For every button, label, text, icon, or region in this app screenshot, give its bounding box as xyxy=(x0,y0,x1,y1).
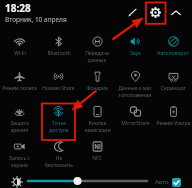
button[interactable]: Скриншот xyxy=(154,67,192,102)
button[interactable]: Передача данных xyxy=(78,32,116,67)
button[interactable]: Режим Ультра xyxy=(154,102,192,137)
staticText: Точка доступа xyxy=(49,120,69,133)
staticText: Huawei Share xyxy=(42,85,75,92)
staticText: Режим Ультра xyxy=(156,120,191,127)
staticText: Защита зрения xyxy=(10,120,29,133)
staticText: Wi-Fi xyxy=(14,50,26,57)
staticText: Данные о мес тоположении xyxy=(118,85,152,98)
button[interactable]: Режим полета xyxy=(0,67,39,102)
staticText: Режим полета xyxy=(2,85,37,92)
staticText: Вторник, 10 апреля xyxy=(5,15,67,24)
staticText: Скриншот xyxy=(161,85,186,92)
button[interactable]: Автоповорот xyxy=(154,32,192,67)
button[interactable]: Данные о мес тоположении xyxy=(116,67,154,102)
staticText: Фонарик xyxy=(86,85,108,92)
staticText: Звук xyxy=(130,50,141,57)
staticText: NFC xyxy=(92,155,102,162)
button[interactable]: Collapse xyxy=(170,7,182,19)
staticText: Bluetooth xyxy=(47,50,71,57)
staticText: Кнопка навигации xyxy=(84,120,111,133)
staticText: Автоповорот xyxy=(157,50,189,57)
staticText: MirrorShare xyxy=(121,120,150,127)
button[interactable]: Точка доступа xyxy=(39,102,78,137)
staticText: Не беспокоить xyxy=(45,155,73,168)
button[interactable]: Huawei Share xyxy=(39,67,78,102)
button[interactable]: Защита зрения xyxy=(0,102,39,137)
staticText: Передача данных xyxy=(85,50,109,63)
button[interactable]: Wi-Fi xyxy=(0,32,39,67)
button[interactable]: Запись с экрана xyxy=(0,137,39,172)
button[interactable]: Edit xyxy=(127,6,139,18)
button[interactable]: Auto brightness xyxy=(172,178,181,187)
button[interactable]: NFC xyxy=(78,137,116,172)
button[interactable]: MirrorShare xyxy=(116,102,154,137)
button[interactable]: Кнопка навигации xyxy=(78,102,116,137)
button[interactable]: Settings xyxy=(149,6,162,19)
staticText: 18:28 xyxy=(5,1,31,15)
staticText: Авто xyxy=(155,178,169,186)
button[interactable]: Не беспокоить xyxy=(39,137,78,172)
button[interactable]: Звук xyxy=(116,32,154,67)
button[interactable]: Bluetooth xyxy=(39,32,78,67)
button[interactable]: Фонарик xyxy=(78,67,116,102)
button[interactable]: Brightness xyxy=(27,175,148,187)
staticText: Запись с экрана xyxy=(9,155,30,168)
